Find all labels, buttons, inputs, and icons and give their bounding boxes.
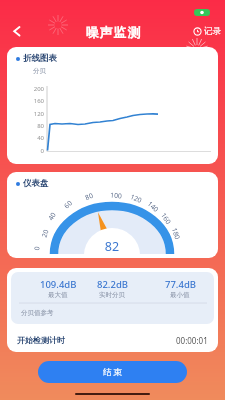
- staticText: 80: [80, 189, 98, 204]
- staticText: 结束: [102, 367, 123, 378]
- staticText: 40: [44, 207, 60, 226]
- staticText: 0: [31, 240, 43, 257]
- staticText: 最小值: [170, 291, 190, 299]
- staticText: 0: [25, 147, 44, 155]
- staticText: 开始检测计时: [17, 335, 65, 345]
- staticText: 60: [59, 196, 77, 213]
- staticText: 噪声监测: [85, 24, 141, 40]
- staticText: 折线图表: [23, 53, 57, 64]
- staticText: 120: [127, 191, 145, 206]
- staticText: 180: [169, 224, 183, 242]
- staticText: 仪表盘: [23, 178, 49, 189]
- staticText: 82: [100, 238, 124, 255]
- staticText: 实时分贝: [99, 291, 125, 299]
- button[interactable]: 记录: [193, 26, 221, 37]
- staticText: 最大值: [48, 291, 68, 299]
- staticText: 120: [25, 110, 44, 118]
- staticText: 82.2dB: [97, 278, 128, 291]
- staticText: 77.4dB: [165, 278, 196, 291]
- staticText: 80: [25, 122, 44, 130]
- staticText: 分贝值参考: [21, 309, 54, 317]
- staticText: 分贝: [33, 67, 46, 75]
- staticText: 记录: [204, 26, 221, 37]
- staticText: 160: [25, 97, 44, 105]
- button[interactable]: 结束: [38, 361, 187, 383]
- staticText: 00:00:01: [176, 335, 208, 346]
- staticText: 20: [38, 224, 52, 242]
- staticText: 140: [144, 198, 162, 215]
- staticText: 109.4dB: [40, 278, 77, 291]
- button[interactable]: [13, 26, 21, 37]
- staticText: 40: [25, 134, 44, 142]
- staticText: 100: [108, 190, 124, 201]
- staticText: 160: [158, 209, 174, 228]
- staticText: 200: [25, 85, 44, 93]
